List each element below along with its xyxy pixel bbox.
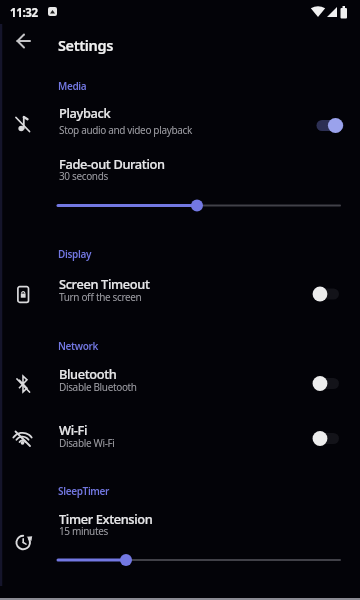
staticText: 15 minutes <box>59 524 108 538</box>
staticText: Wi-Fi <box>59 421 88 438</box>
button[interactable] <box>0 358 360 406</box>
staticText: 11:32 <box>10 5 38 21</box>
button[interactable] <box>0 96 360 146</box>
staticText: Stop audio and video playback <box>59 123 192 137</box>
staticText: Disable Bluetooth <box>59 380 137 394</box>
staticText: Media <box>58 79 87 93</box>
staticText: Timer Extension <box>59 510 153 527</box>
staticText: Settings <box>58 35 114 55</box>
button[interactable] <box>0 148 360 216</box>
button[interactable] <box>0 414 360 462</box>
button[interactable] <box>0 25 48 57</box>
staticText: Network <box>58 339 99 353</box>
staticText: Turn off the screen <box>59 290 142 304</box>
staticText: Screen Timeout <box>59 275 150 292</box>
staticText: Bluetooth <box>59 365 117 382</box>
staticText: Fade-out Duration <box>59 155 165 172</box>
staticText: Playback <box>59 104 111 121</box>
staticText: 30 seconds <box>59 169 108 183</box>
staticText: SleepTimer <box>58 484 110 498</box>
staticText: Display <box>58 247 92 261</box>
button[interactable] <box>0 266 360 314</box>
button[interactable] <box>0 502 360 572</box>
staticText: Disable Wi-Fi <box>59 436 115 450</box>
